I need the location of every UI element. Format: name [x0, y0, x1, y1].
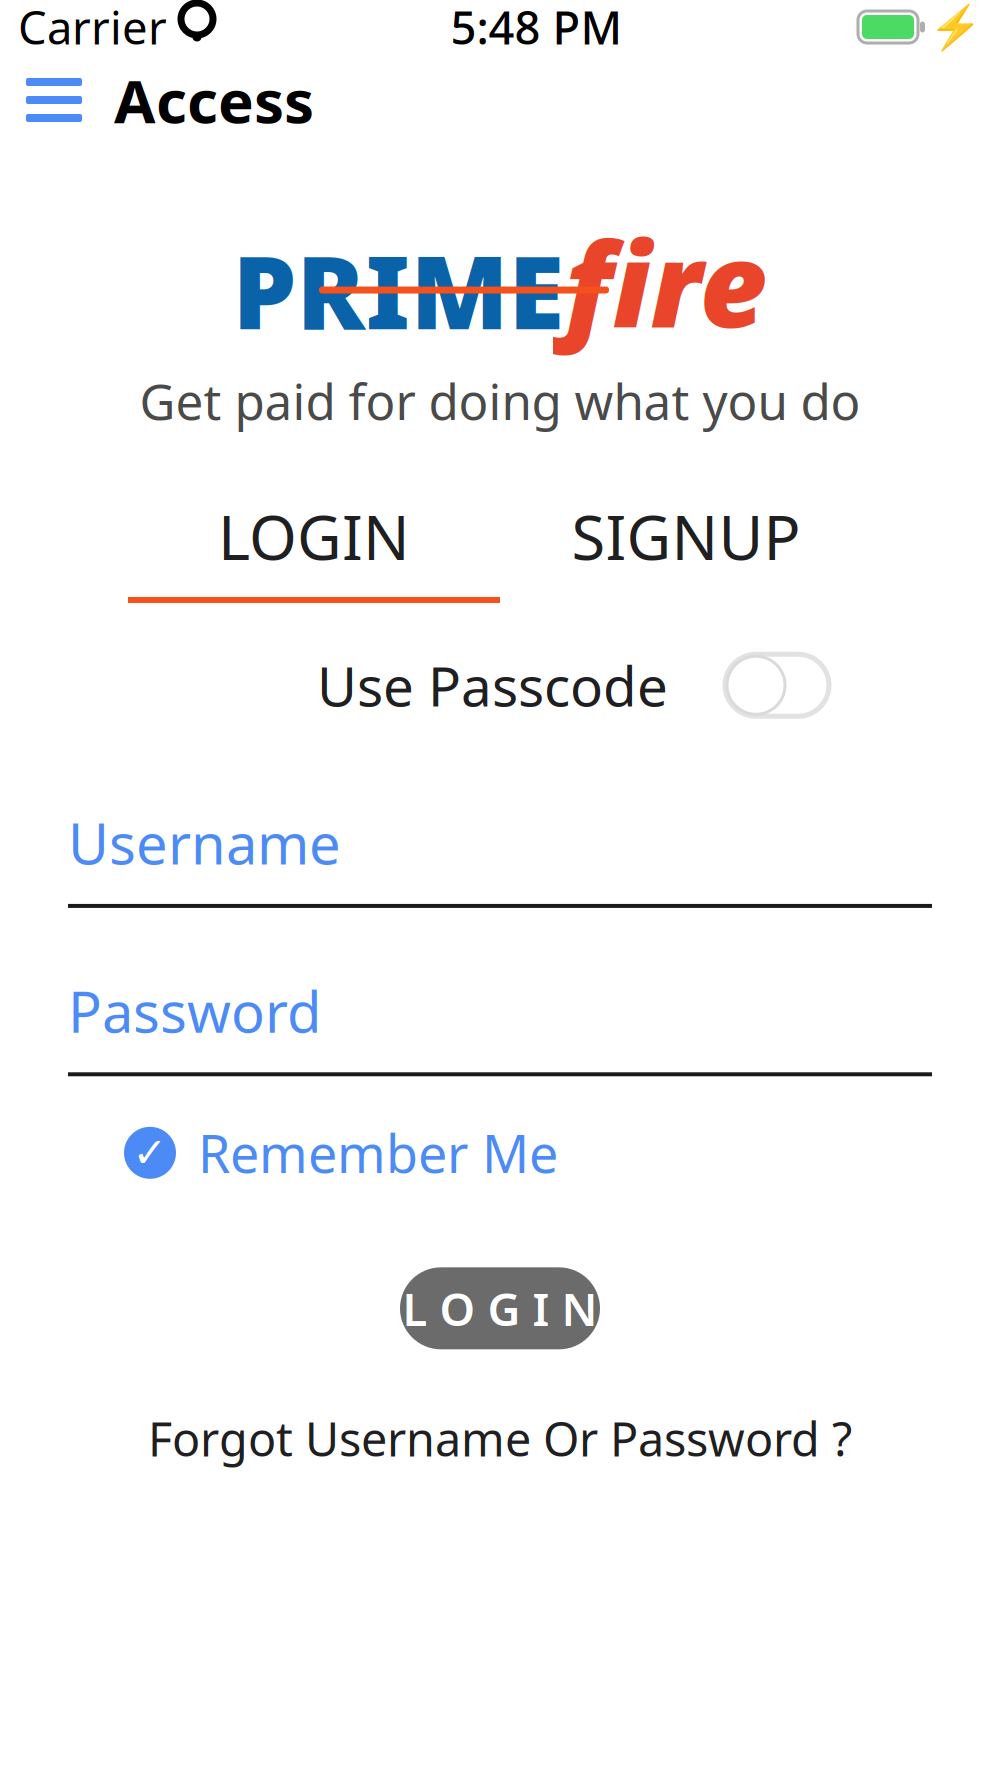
button[interactable]: SIGNUP — [500, 495, 872, 603]
staticText: LOGIN — [218, 495, 410, 577]
staticText: Remember Me — [198, 1118, 558, 1187]
staticText: Password — [68, 974, 321, 1048]
staticText: ⚡ — [929, 3, 982, 51]
button[interactable]: Use Passcode — [722, 649, 832, 721]
button[interactable]: Access — [102, 50, 326, 150]
staticText: Forgot Username Or Password ? — [148, 1407, 852, 1469]
staticText: Carrier — [18, 0, 167, 57]
staticText: Access — [114, 60, 314, 140]
staticText: fire — [564, 204, 767, 360]
staticText: Username — [68, 806, 341, 880]
staticText: L O G I N — [402, 1278, 597, 1338]
staticText: SIGNUP — [571, 495, 800, 577]
staticText: Use Passcode — [317, 649, 668, 722]
staticText: ✓ — [132, 1129, 167, 1176]
button[interactable]: Forgot Username Or Password ? — [124, 1393, 876, 1483]
button[interactable]: ✓ — [124, 1110, 558, 1195]
staticText: 5:48 PM — [450, 0, 622, 57]
staticText: PRIME — [232, 223, 564, 357]
staticText: Get paid for doing what you do — [139, 368, 860, 433]
button[interactable]: LOGIN — [128, 495, 500, 603]
button[interactable]: L O G I N — [400, 1267, 600, 1349]
button[interactable]: Menu — [6, 57, 102, 143]
